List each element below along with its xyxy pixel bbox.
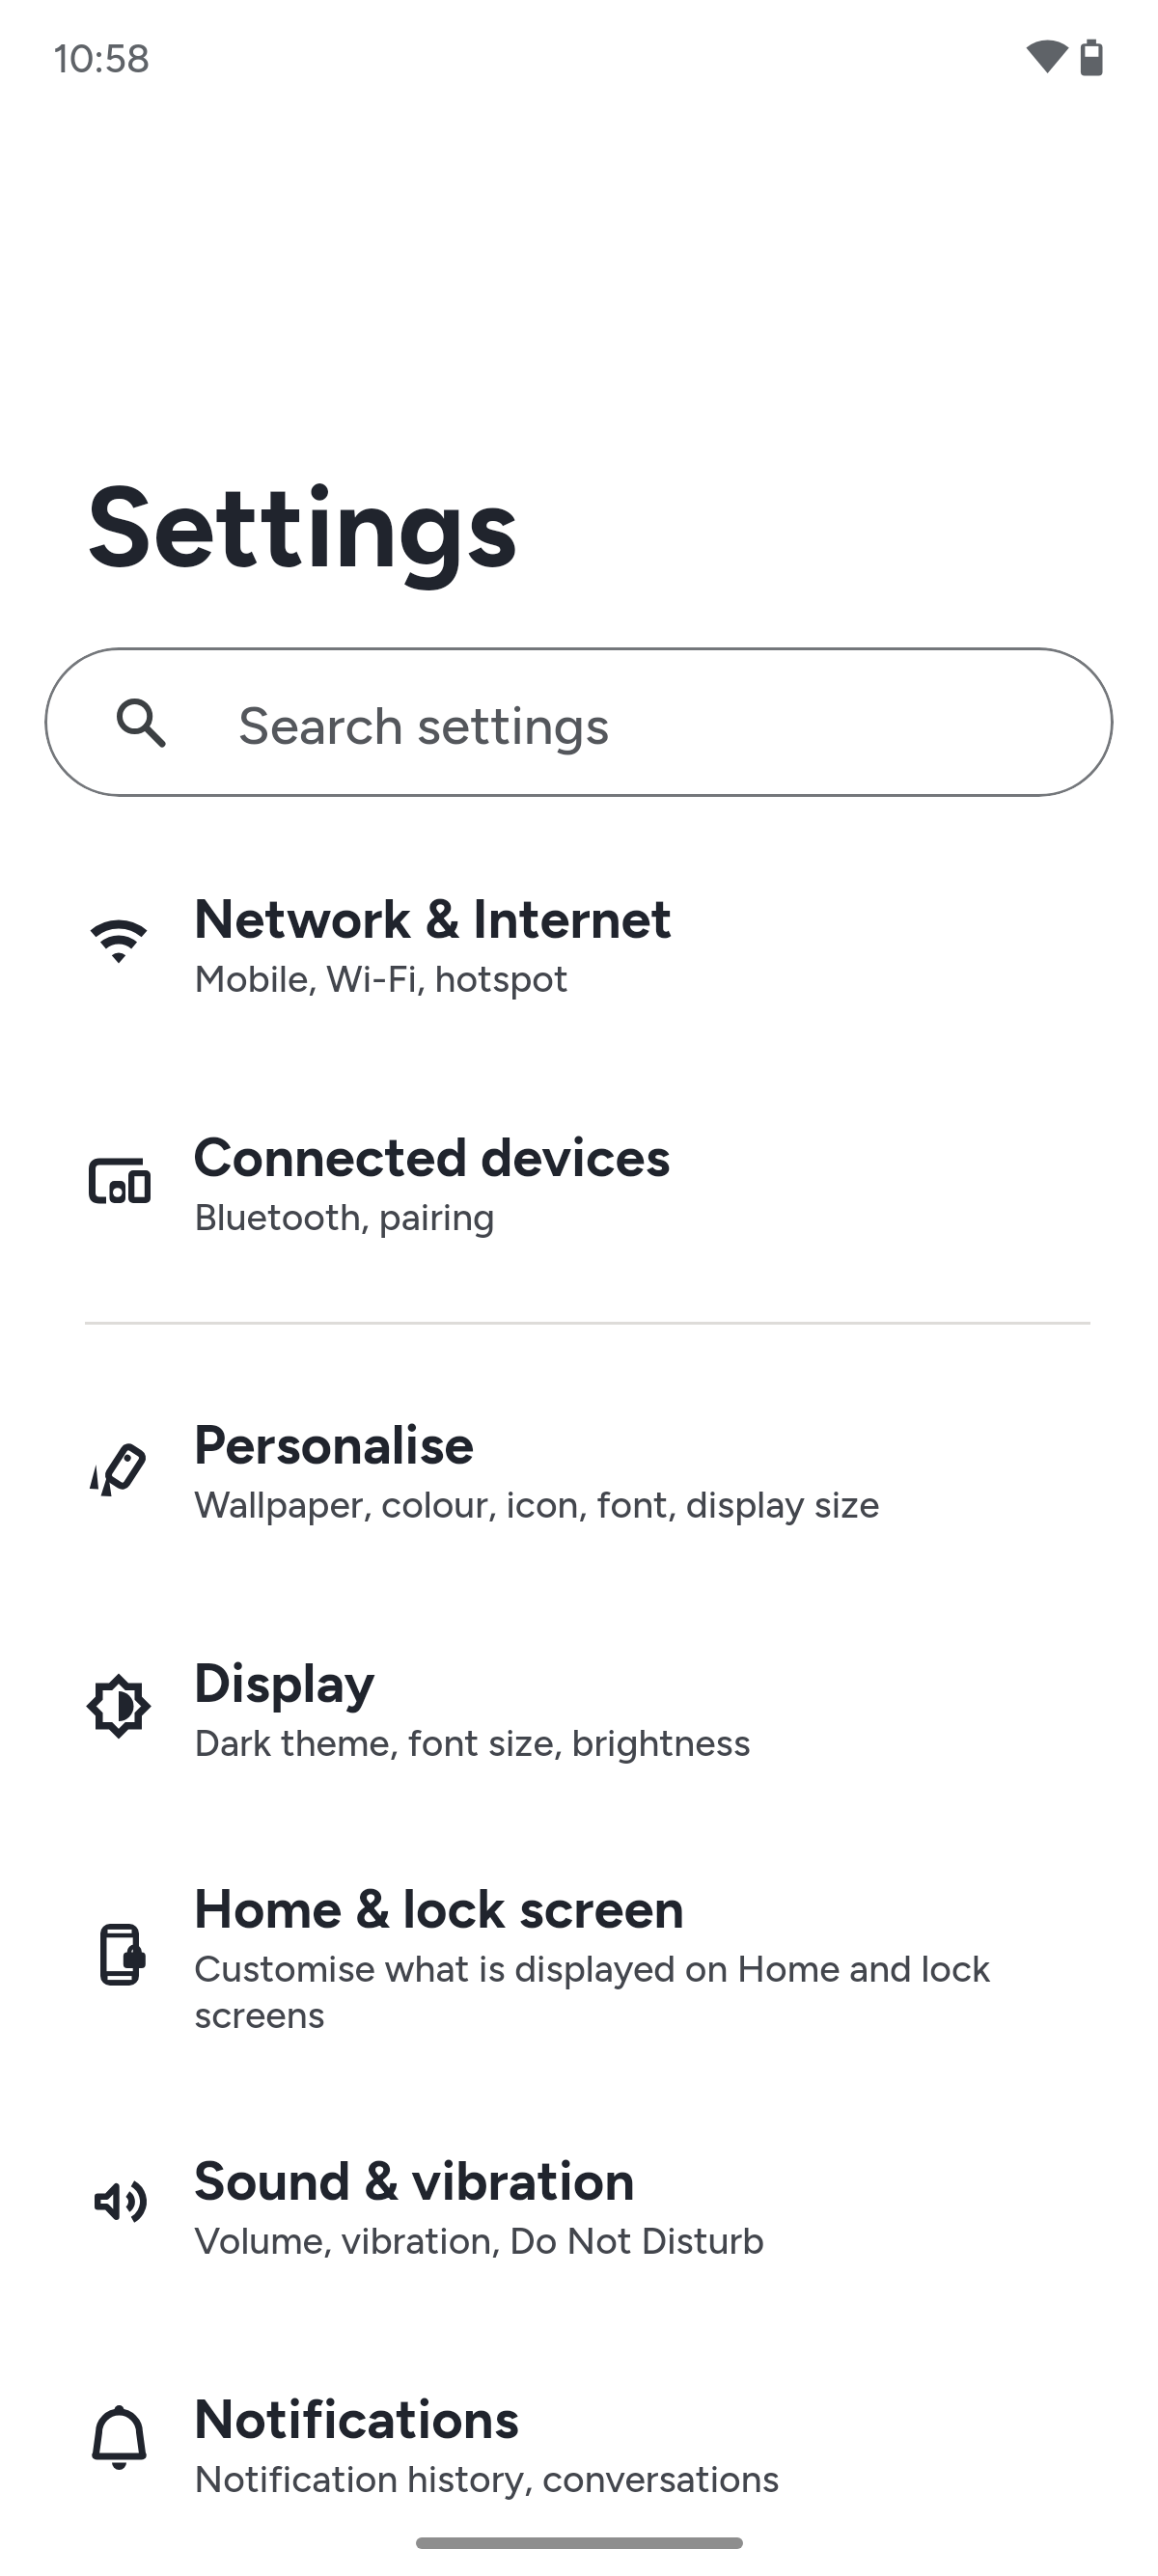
staticText: Home & lock screen <box>193 1877 685 1941</box>
button[interactable]: Search settings <box>44 647 1114 797</box>
staticText: Display <box>193 1651 375 1715</box>
staticText: Personalise <box>193 1412 475 1477</box>
staticText: Wallpaper, colour, icon, font, display s… <box>194 1482 1014 1527</box>
button[interactable]: Sound & vibration <box>0 2113 1158 2317</box>
staticText: Notifications <box>193 2387 519 2452</box>
button[interactable]: Personalise <box>0 1377 1158 1581</box>
staticText: Bluetooth, pairing <box>194 1194 1014 1240</box>
staticText: Search settings <box>237 694 610 757</box>
button[interactable]: Network & Internet <box>0 851 1158 1055</box>
button[interactable]: Notifications <box>0 2351 1158 2556</box>
staticText: Connected devices <box>193 1125 671 1190</box>
staticText: Customise what is displayed on Home and … <box>194 1946 1014 2038</box>
button[interactable]: Connected devices <box>0 1089 1158 1294</box>
staticText: Dark theme, font size, brightness <box>194 1720 1014 1766</box>
staticText: Volume, vibration, Do Not Disturb <box>194 2218 1014 2263</box>
button[interactable] <box>416 2537 743 2549</box>
staticText: Sound & vibration <box>193 2149 636 2213</box>
staticText: Settings <box>85 460 517 594</box>
staticText: Notification history, conversations <box>194 2456 1014 2502</box>
button[interactable]: Display <box>0 1615 1158 1820</box>
staticText: 10:58 <box>53 36 151 82</box>
staticText: Mobile, Wi-Fi, hotspot <box>194 956 1014 1001</box>
staticText: Network & Internet <box>193 887 674 951</box>
button[interactable]: Home & lock screen <box>0 1841 1158 2092</box>
